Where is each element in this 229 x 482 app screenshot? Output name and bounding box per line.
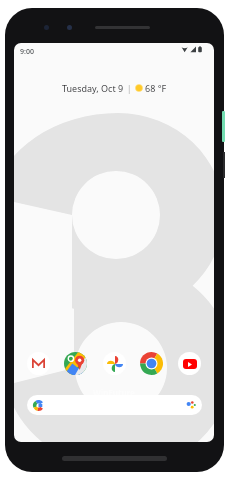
- staticText: 68 °F: [145, 82, 167, 94]
- button[interactable]: Gmail: [27, 352, 50, 375]
- staticText: 9:00: [20, 47, 34, 57]
- staticText: |: [127, 83, 132, 94]
- button[interactable]: YouTube: [178, 352, 201, 375]
- button[interactable]: Photos: [103, 352, 126, 375]
- button[interactable]: Maps: [64, 352, 87, 375]
- staticText: Tuesday, Oct 9: [62, 82, 124, 94]
- button[interactable]: [27, 395, 202, 415]
- button[interactable]: Chrome: [140, 352, 163, 375]
